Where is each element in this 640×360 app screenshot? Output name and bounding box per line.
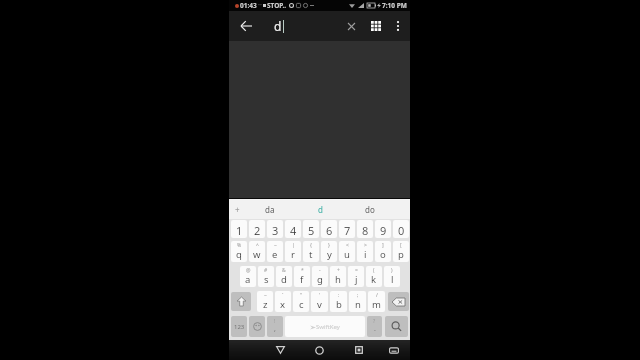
staticText: r — [291, 248, 295, 261]
button[interactable]: | — [285, 241, 301, 262]
button[interactable]: ~ — [257, 291, 273, 312]
staticText: t — [309, 248, 313, 261]
button[interactable]: Clear query — [340, 11, 362, 41]
staticText: SwiftKey — [316, 323, 340, 331]
button[interactable]: Space — [285, 316, 365, 337]
staticText: 2 — [254, 223, 261, 238]
staticText: h — [335, 273, 341, 286]
button[interactable]: ~ — [267, 241, 283, 262]
button[interactable]: Hide keyboard — [382, 340, 406, 360]
staticText: 123 — [234, 323, 245, 331]
staticText: ; — [357, 292, 359, 299]
staticText: •• — [258, 2, 262, 9]
staticText: STOP.. — [267, 1, 287, 10]
button[interactable]: 2 — [249, 220, 265, 238]
button[interactable]: > — [357, 241, 373, 262]
button[interactable]: Comma — [267, 316, 283, 337]
button[interactable]: ] — [375, 241, 391, 262]
staticText: = — [355, 267, 358, 274]
button[interactable]: Recent apps — [347, 340, 371, 360]
staticText: ^ — [256, 242, 259, 249]
button[interactable]: { — [303, 241, 319, 262]
staticText: 4 — [290, 223, 297, 238]
button[interactable]: Apps — [365, 11, 387, 41]
button[interactable]: + — [330, 266, 346, 287]
button[interactable]: 7 — [339, 220, 355, 238]
button[interactable]: & — [276, 266, 292, 287]
staticText: e — [272, 248, 278, 261]
button[interactable]: 4 — [285, 220, 301, 238]
button[interactable]: ` — [275, 291, 291, 312]
staticText: > — [364, 242, 367, 249]
button[interactable]: d — [295, 199, 345, 219]
button[interactable]: ) — [384, 266, 400, 287]
staticText: u — [344, 248, 350, 261]
staticText: ~ — [274, 242, 277, 249]
button[interactable]: 9 — [375, 220, 391, 238]
button[interactable]: Emoji — [249, 316, 265, 337]
button[interactable]: ^ — [249, 241, 265, 262]
staticText: l — [391, 273, 394, 286]
staticText: k — [371, 273, 377, 286]
button[interactable]: 5 — [303, 220, 319, 238]
button[interactable]: da — [245, 199, 295, 219]
staticText: # — [264, 267, 268, 274]
staticText: 1 — [236, 223, 243, 238]
staticText: - — [319, 267, 321, 274]
staticText: 7 — [344, 223, 351, 238]
button[interactable]: / — [368, 291, 385, 312]
button[interactable]: = — [348, 266, 364, 287]
staticText: { — [310, 242, 312, 249]
button[interactable]: - — [312, 266, 328, 287]
staticText: [ — [400, 242, 402, 249]
button[interactable]: Search — [385, 316, 408, 337]
staticText: ' — [319, 292, 321, 299]
staticText: ( — [373, 267, 375, 274]
staticText: b — [336, 298, 342, 311]
staticText: ~ — [264, 292, 267, 299]
button[interactable]: % — [231, 241, 247, 262]
button[interactable]: < — [339, 241, 355, 262]
button[interactable]: : — [330, 291, 347, 312]
staticText: & — [282, 267, 286, 274]
staticText: do — [365, 204, 375, 215]
button[interactable]: Back — [268, 340, 292, 360]
button[interactable]: Delete — [388, 292, 409, 311]
staticText: 0 — [398, 223, 405, 238]
staticText: 9 — [380, 223, 387, 238]
button[interactable]: Shift — [231, 292, 251, 311]
button[interactable]: } — [321, 241, 337, 262]
staticText: f — [300, 273, 304, 286]
button[interactable]: do — [345, 199, 395, 219]
staticText: s — [264, 273, 269, 286]
staticText: w — [253, 248, 261, 261]
button[interactable]: ( — [366, 266, 382, 287]
button[interactable]: + — [229, 199, 245, 219]
button[interactable]: 8 — [357, 220, 373, 238]
staticText: / — [376, 292, 378, 299]
button[interactable]: 6 — [321, 220, 337, 238]
button[interactable]: 0 — [393, 220, 409, 238]
staticText: 6 — [326, 223, 333, 238]
button[interactable]: Navigate up — [229, 11, 262, 41]
staticText: z — [263, 298, 268, 311]
button[interactable]: 1 — [231, 220, 247, 238]
staticText: m — [372, 298, 381, 311]
button[interactable]: More options — [387, 11, 409, 41]
button[interactable]: Numbers and symbols — [231, 316, 247, 337]
staticText: d — [318, 204, 323, 215]
button[interactable]: ' — [311, 291, 328, 312]
staticText: } — [328, 242, 330, 249]
button[interactable]: Home — [307, 340, 331, 360]
button[interactable]: # — [258, 266, 274, 287]
staticText: ? — [373, 318, 376, 325]
staticText: d — [281, 273, 287, 286]
button[interactable]: Period — [367, 316, 382, 337]
button[interactable]: @ — [240, 266, 256, 287]
button[interactable]: 3 — [267, 220, 283, 238]
button[interactable]: [ — [393, 241, 409, 262]
staticText: 01:43 — [240, 1, 257, 10]
button[interactable]: * — [294, 266, 310, 287]
button[interactable]: " — [293, 291, 309, 312]
button[interactable]: ; — [349, 291, 366, 312]
